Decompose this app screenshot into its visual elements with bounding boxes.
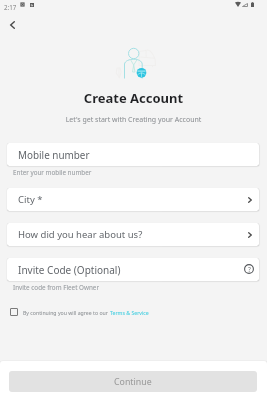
staticText: How did you hear about us? <box>18 228 248 241</box>
staticText: Continue <box>114 376 152 388</box>
button[interactable]: Invite Code (Optional) <box>7 258 259 281</box>
button[interactable]: How did you hear about us? <box>7 223 259 246</box>
staticText: By continuing you will agree to our <box>23 309 110 316</box>
button[interactable]: City * <box>7 188 259 211</box>
button[interactable]: Mobile number <box>7 143 259 166</box>
staticText: Let's get start with Creating your Accou… <box>0 115 267 125</box>
staticText: ? <box>248 265 251 274</box>
staticText: Invite code from Fleet Owner <box>13 283 99 292</box>
button[interactable]: By continuing you will agree to our <box>10 308 149 316</box>
staticText: 2:17 <box>4 3 17 11</box>
staticText: Terms & Service <box>110 309 149 316</box>
button[interactable]: Back <box>2 15 22 35</box>
staticText: Enter your mobile number <box>13 168 92 177</box>
staticText: Create Account <box>0 89 267 107</box>
button[interactable]: Help <box>244 264 254 274</box>
staticText: Mobile number <box>18 148 90 161</box>
button[interactable]: Continue <box>9 371 257 392</box>
staticText: Invite Code (Optional) <box>18 263 242 277</box>
staticText: City * <box>18 193 248 206</box>
